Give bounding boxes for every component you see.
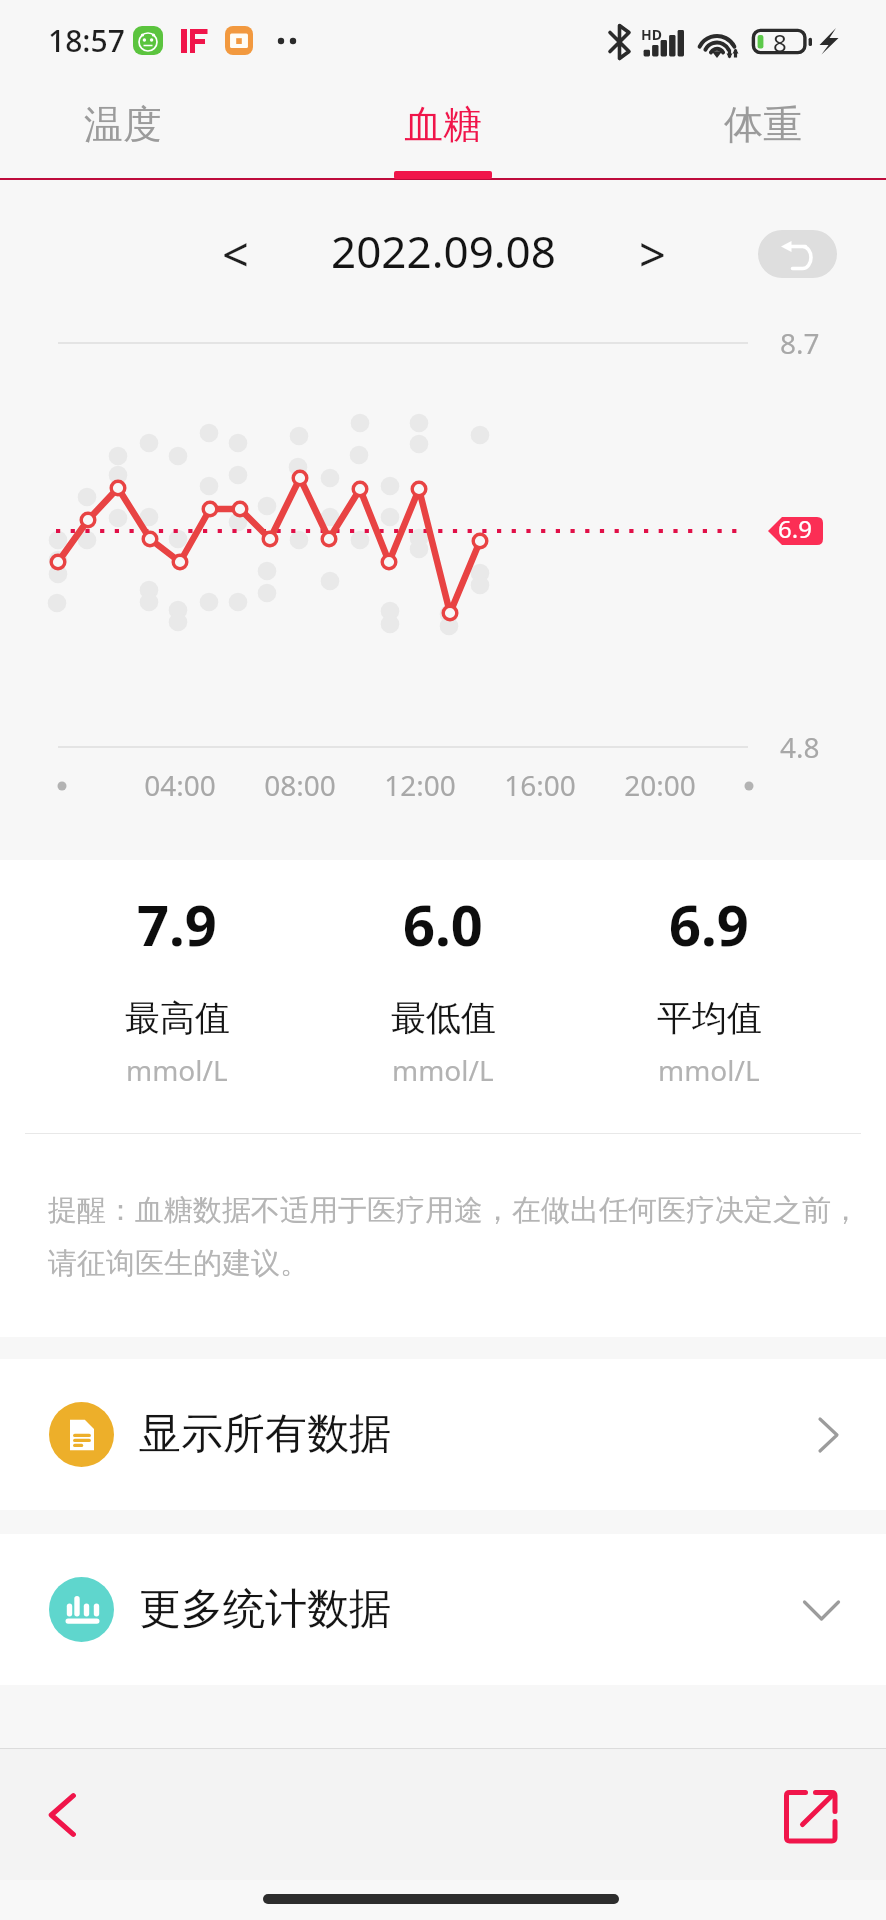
staticText: 04:00 <box>144 766 216 804</box>
staticText: < <box>222 222 249 286</box>
staticText: 最低值 <box>391 996 496 1040</box>
staticText: 提醒：血糖数据不适用于医疗用途，在做出任何医疗决定之前，请征询医生的建议。 <box>48 1192 868 1281</box>
staticText: 8 <box>773 26 787 59</box>
staticText: 2022.09.08 <box>331 221 556 281</box>
button[interactable]: Previous day <box>203 224 267 288</box>
staticText: 12:00 <box>384 766 456 804</box>
staticText: HD <box>641 25 662 44</box>
button[interactable]: 显示所有数据 <box>0 1359 886 1510</box>
staticText: 更多统计数据 <box>139 1583 391 1636</box>
staticText: 血糖 <box>404 100 482 149</box>
button[interactable]: Back <box>23 1777 99 1853</box>
staticText: 平均值 <box>657 996 762 1040</box>
staticText: 6.0 <box>403 886 483 962</box>
staticText: mmol/L <box>126 1051 228 1089</box>
button[interactable]: 血糖 <box>363 80 523 180</box>
staticText: 最高值 <box>125 996 230 1040</box>
staticText: mmol/L <box>658 1051 760 1089</box>
staticText: 16:00 <box>504 766 576 804</box>
button[interactable]: Share <box>771 1777 847 1853</box>
staticText: 6.9 <box>778 512 812 543</box>
staticText: 体重 <box>724 100 802 149</box>
staticText: 6.9 <box>669 886 749 962</box>
staticText: 18:57 <box>48 20 125 61</box>
button[interactable]: 更多统计数据 <box>0 1534 886 1685</box>
staticText: 显示所有数据 <box>139 1408 391 1461</box>
staticText: mmol/L <box>392 1051 494 1089</box>
staticText: 20:00 <box>624 766 696 804</box>
staticText: > <box>639 222 666 286</box>
button[interactable]: 体重 <box>683 80 843 180</box>
button[interactable]: 温度 <box>43 80 203 180</box>
button[interactable]: Reset <box>758 230 837 278</box>
staticText: 温度 <box>84 100 162 149</box>
staticText: 08:00 <box>264 766 336 804</box>
staticText: 4.8 <box>780 728 820 766</box>
staticText: 7.9 <box>137 886 217 962</box>
button[interactable]: Next day <box>620 224 684 288</box>
staticText: 8.7 <box>780 324 820 362</box>
